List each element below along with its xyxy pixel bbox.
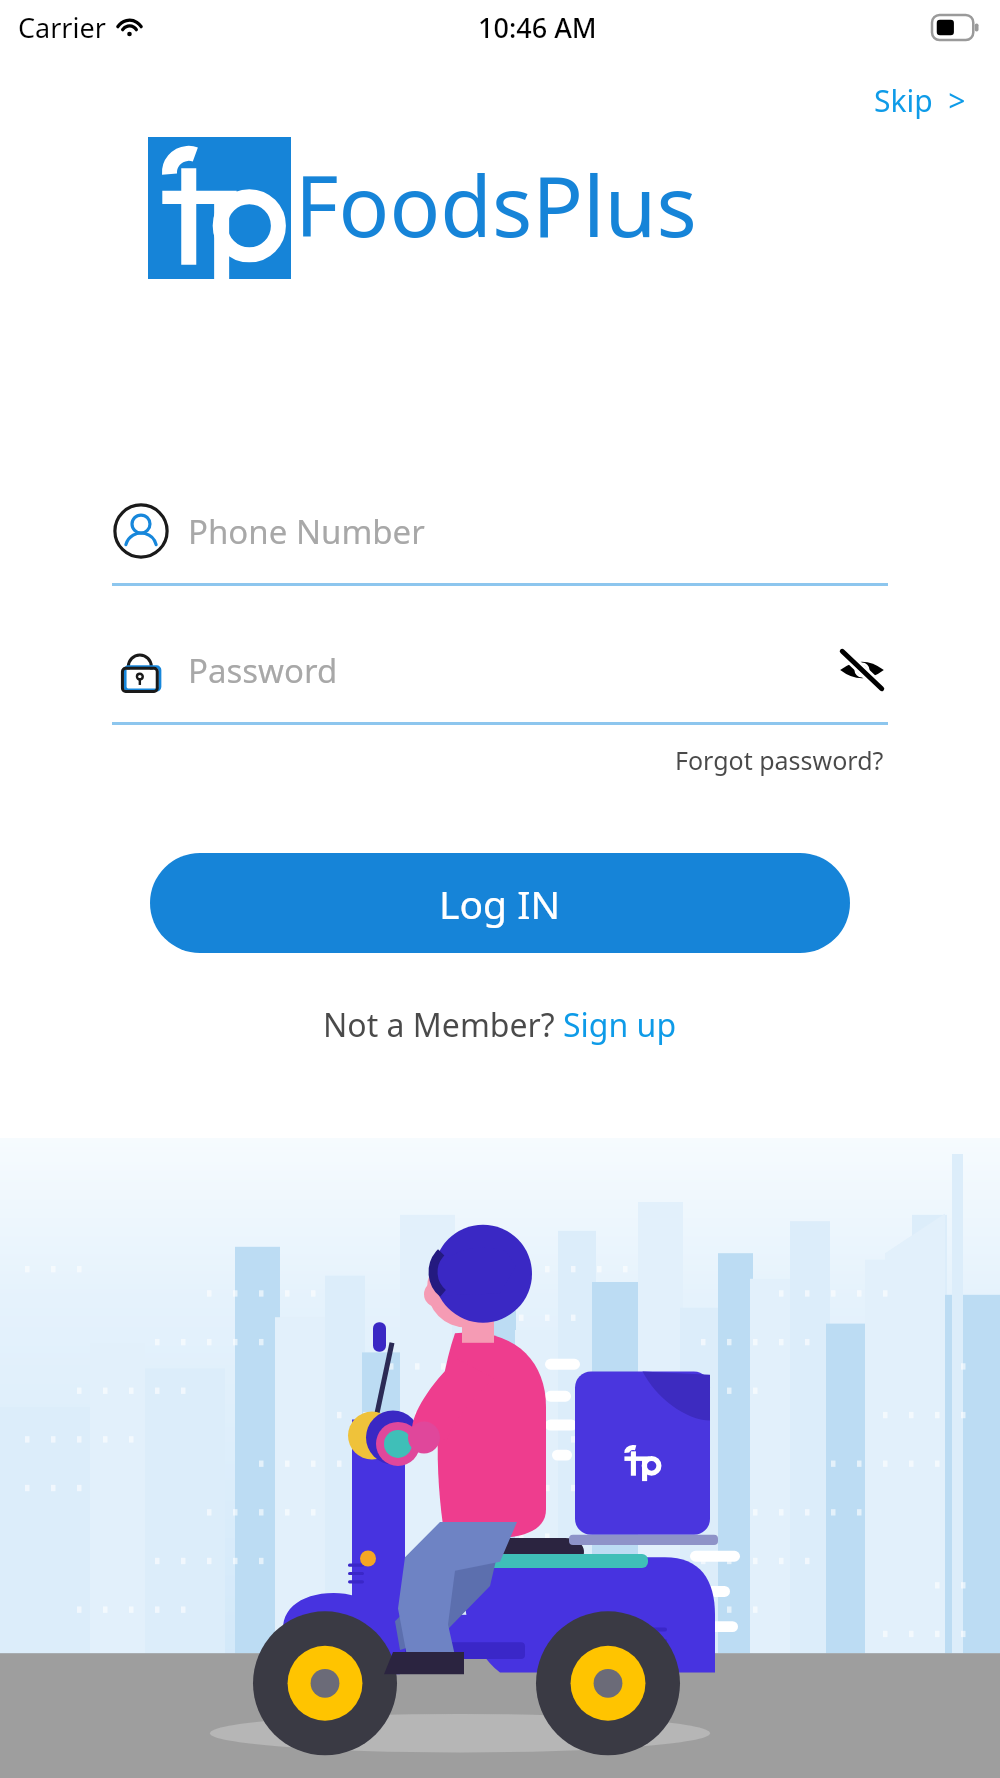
staticText: Phone Number (188, 509, 425, 554)
staticText: Password (188, 648, 338, 693)
button[interactable]: Password (112, 632, 888, 725)
other: User (112, 502, 170, 560)
button[interactable]: Forgot password? (671, 739, 888, 781)
staticText: Log IN (439, 877, 561, 930)
staticText: FoodsPlus (295, 147, 697, 261)
staticText: Sign up (563, 1003, 677, 1047)
other: Password (112, 641, 170, 699)
staticText: Not a Member? (323, 1003, 563, 1047)
staticText: Forgot password? (675, 743, 884, 777)
button[interactable]: Skip > (866, 74, 974, 127)
button[interactable]: Show password (836, 644, 888, 696)
button[interactable]: Sign up (563, 1003, 677, 1047)
button[interactable]: Log IN (150, 853, 850, 953)
staticText: Carrier (18, 9, 106, 46)
staticText: Skip > (874, 80, 966, 121)
button[interactable]: User (112, 493, 888, 586)
staticText: 10:46 AM (478, 9, 597, 46)
